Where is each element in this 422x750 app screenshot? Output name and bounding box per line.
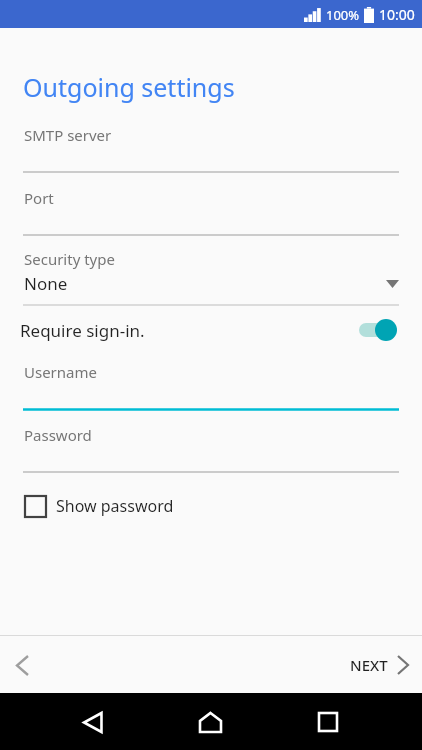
staticText: 100% — [326, 6, 360, 24]
button[interactable]: Home — [186, 698, 234, 746]
button[interactable]: SMTP server — [0, 125, 422, 174]
staticText: NEXT — [350, 655, 388, 675]
staticText: SMTP server — [24, 125, 112, 145]
button[interactable]: Require sign-in. — [0, 306, 422, 354]
button[interactable]: Back — [69, 698, 117, 746]
button[interactable]: Security type — [0, 249, 422, 306]
button[interactable]: Recents — [304, 698, 352, 746]
staticText: Require sign-in. — [20, 319, 359, 342]
staticText: Username — [24, 362, 97, 382]
button[interactable]: Show password — [0, 486, 422, 526]
button[interactable]: Back — [0, 643, 44, 687]
staticText: None — [24, 272, 386, 295]
button[interactable]: Password — [0, 425, 422, 474]
staticText: Port — [24, 188, 54, 208]
staticText: Security type — [24, 249, 115, 269]
staticText: Password — [24, 425, 92, 445]
button[interactable]: Port — [0, 188, 422, 237]
button[interactable]: NEXT — [336, 645, 422, 685]
staticText: Outgoing settings — [23, 70, 235, 104]
staticText: 10:00 — [379, 5, 415, 24]
button[interactable]: Username — [0, 362, 422, 411]
staticText: Show password — [56, 495, 174, 517]
